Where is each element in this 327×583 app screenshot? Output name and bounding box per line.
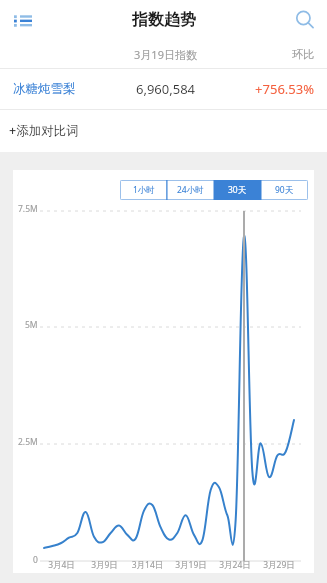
button[interactable]: 冰糖炖雪梨 xyxy=(0,69,327,109)
staticText: 3月4日 xyxy=(40,559,83,571)
staticText: 指数趋势 xyxy=(132,10,196,30)
button[interactable]: 24小时 xyxy=(167,180,214,200)
staticText: 3月24日 xyxy=(213,559,257,571)
staticText: 3月19日 xyxy=(169,559,213,571)
staticText: 3月9日 xyxy=(83,559,126,571)
staticText: +添加对比词 xyxy=(9,122,79,139)
button[interactable]: 90天 xyxy=(261,180,308,200)
staticText: +756.53% xyxy=(233,80,314,98)
button[interactable]: 30天 xyxy=(214,180,261,200)
staticText: 1小时 xyxy=(133,184,155,196)
button[interactable]: 1小时 xyxy=(120,180,167,200)
staticText: 环比 xyxy=(233,47,314,61)
staticText: 24小时 xyxy=(177,184,204,196)
staticText: 冰糖炖雪梨 xyxy=(13,81,98,97)
button[interactable]: Search xyxy=(283,0,327,40)
staticText: 0 xyxy=(33,554,38,566)
staticText: 90天 xyxy=(275,184,294,196)
staticText: 2.5M xyxy=(18,436,38,448)
staticText: 3月29日 xyxy=(257,559,301,571)
staticText: 6,960,584 xyxy=(98,80,233,98)
staticText: 3月19日指数 xyxy=(98,47,233,62)
staticText: 7.5M xyxy=(18,203,38,215)
staticText: 30天 xyxy=(228,184,247,196)
staticText: 5M xyxy=(25,319,38,331)
button[interactable]: +添加对比词 xyxy=(0,110,327,151)
button[interactable]: Menu xyxy=(0,0,46,40)
staticText: 3月14日 xyxy=(126,559,169,571)
